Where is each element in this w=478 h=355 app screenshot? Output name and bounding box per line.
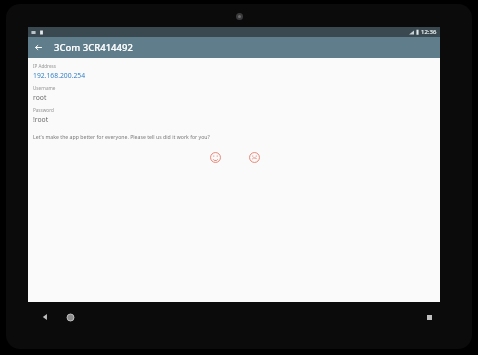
staticText: 12:36 [421, 28, 437, 36]
staticText: 3Com 3CR414492 [54, 41, 133, 54]
staticText: Username [33, 85, 56, 91]
button[interactable]: Navigate up [28, 37, 49, 58]
button[interactable]: No, it did not work [245, 148, 263, 166]
staticText: Password [33, 107, 54, 113]
staticText: 192.168.200.254 [33, 71, 86, 80]
button[interactable]: Home [63, 310, 77, 324]
button[interactable]: Back [38, 310, 52, 324]
staticText: Let's make the app better for everyone. … [33, 133, 210, 140]
button[interactable]: Yes, it worked [206, 148, 224, 166]
staticText: root [33, 93, 47, 102]
staticText: IP Address [33, 63, 56, 69]
button[interactable]: Password [33, 107, 435, 124]
button[interactable]: Recent apps [422, 310, 436, 324]
button[interactable]: Username [33, 85, 435, 102]
button[interactable]: IP Address [33, 63, 435, 80]
staticText: !root [33, 115, 49, 124]
